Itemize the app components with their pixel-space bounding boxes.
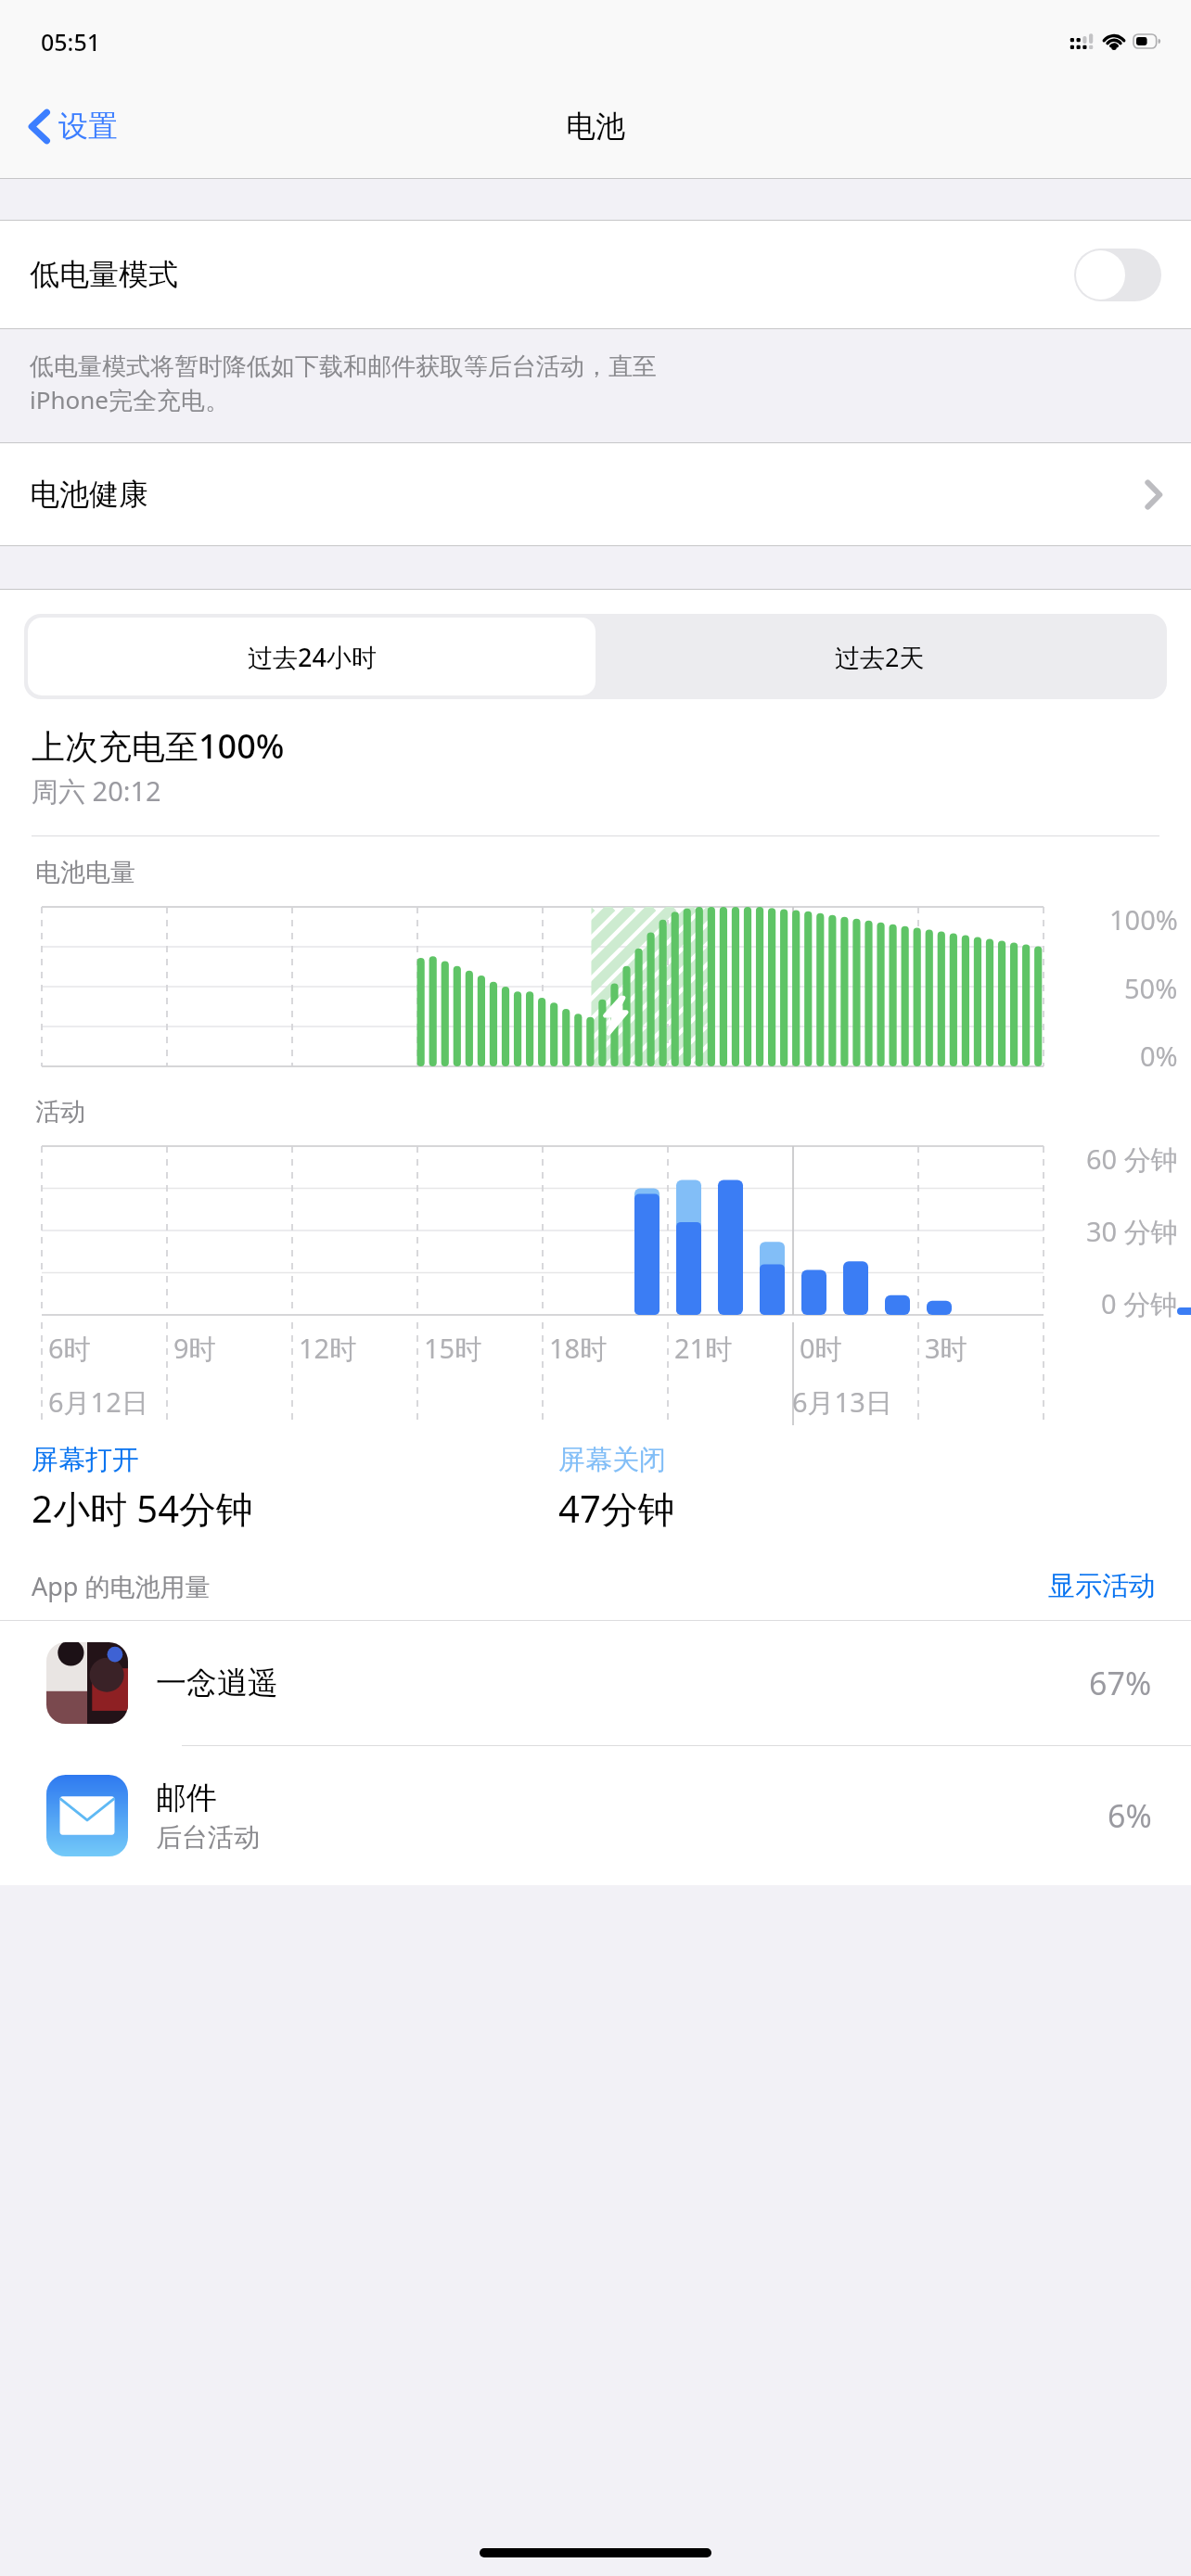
staticText: 0时 xyxy=(800,1330,842,1367)
staticText: 05:51 xyxy=(41,26,101,57)
staticText: 设置 xyxy=(58,108,118,145)
staticText: 一念逍遥 xyxy=(156,1664,278,1702)
other: 返回 设置 xyxy=(30,110,49,143)
button[interactable]: 邮件 xyxy=(0,1746,1191,1885)
button[interactable]: 低电量模式 xyxy=(0,221,1191,328)
staticText: 后台活动 xyxy=(156,1821,260,1854)
staticText: 60 分钟 xyxy=(1086,1141,1178,1178)
button[interactable]: 电池健康 xyxy=(0,443,1191,545)
button[interactable]: 过去2天 xyxy=(595,618,1163,695)
staticText: 9时 xyxy=(173,1330,216,1367)
button[interactable]: 返回 设置 xyxy=(19,96,129,156)
staticText: 过去2天 xyxy=(835,640,925,674)
button[interactable]: 一念逍遥 xyxy=(0,1621,1191,1745)
staticText: 21时 xyxy=(674,1330,733,1367)
staticText: 低电量模式将暂时降低如下载和邮件获取等后台活动，直至 iPhone完全充电。 xyxy=(30,351,657,416)
staticText: 2小时 54分钟 xyxy=(32,1483,254,1534)
staticText: 低电量模式 xyxy=(30,256,178,293)
staticText: 电池电量 xyxy=(35,857,135,888)
staticText: 6月12日 xyxy=(48,1384,148,1421)
staticText: 15时 xyxy=(424,1330,482,1367)
staticText: 50% xyxy=(1124,970,1178,1006)
button[interactable]: 过去24小时 xyxy=(28,618,595,695)
staticText: App 的电池用量 xyxy=(32,1569,211,1603)
staticText: 邮件 xyxy=(156,1779,217,1817)
staticText: 6月13日 xyxy=(792,1384,892,1421)
staticText: 18时 xyxy=(549,1330,608,1367)
staticText: 电池健康 xyxy=(30,476,148,513)
button[interactable]: 低电量模式开关 xyxy=(1074,249,1161,301)
staticText: 0 分钟 xyxy=(1101,1285,1178,1322)
staticText: 周六 20:12 xyxy=(32,772,161,810)
staticText: 显示活动 xyxy=(1048,1569,1156,1603)
staticText: 活动 xyxy=(35,1096,85,1128)
staticText: 0% xyxy=(1140,1038,1178,1074)
staticText: 47分钟 xyxy=(558,1483,675,1534)
staticText: 30 分钟 xyxy=(1086,1213,1178,1250)
staticText: 屏幕打开 xyxy=(32,1443,139,1477)
staticText: 3时 xyxy=(925,1330,967,1367)
staticText: 上次充电至100% xyxy=(32,723,285,769)
other: 打开电池健康 xyxy=(1146,481,1161,508)
staticText: 100% xyxy=(1109,901,1178,937)
staticText: 6时 xyxy=(48,1330,91,1367)
staticText: 67% xyxy=(1089,1662,1152,1704)
button[interactable]: 显示活动 xyxy=(1044,1565,1159,1607)
staticText: 屏幕关闭 xyxy=(558,1443,666,1477)
staticText: 12时 xyxy=(299,1330,357,1367)
staticText: 电池 xyxy=(566,108,625,145)
staticText: 过去24小时 xyxy=(248,640,377,674)
staticText: 6% xyxy=(1108,1794,1152,1837)
